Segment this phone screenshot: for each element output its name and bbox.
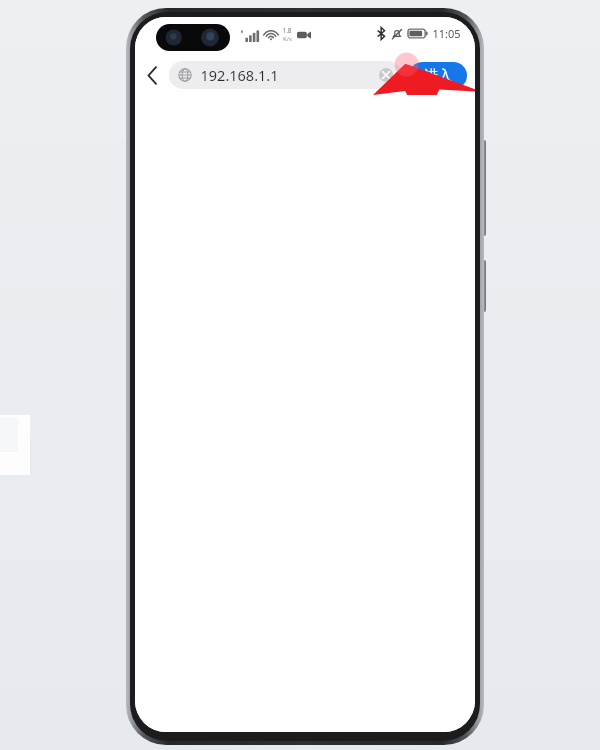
button[interactable]: 192.168.1.1: [169, 61, 402, 89]
button[interactable]: Clear: [372, 61, 400, 89]
button[interactable]: 进入: [409, 62, 467, 89]
button[interactable]: Back: [135, 55, 169, 95]
staticText: 11:05: [432, 26, 461, 41]
staticText: 进入: [424, 67, 452, 85]
staticText: 192.168.1.1: [200, 65, 279, 85]
staticText: 1.8: [282, 26, 292, 35]
staticText: K/s: [283, 35, 292, 43]
